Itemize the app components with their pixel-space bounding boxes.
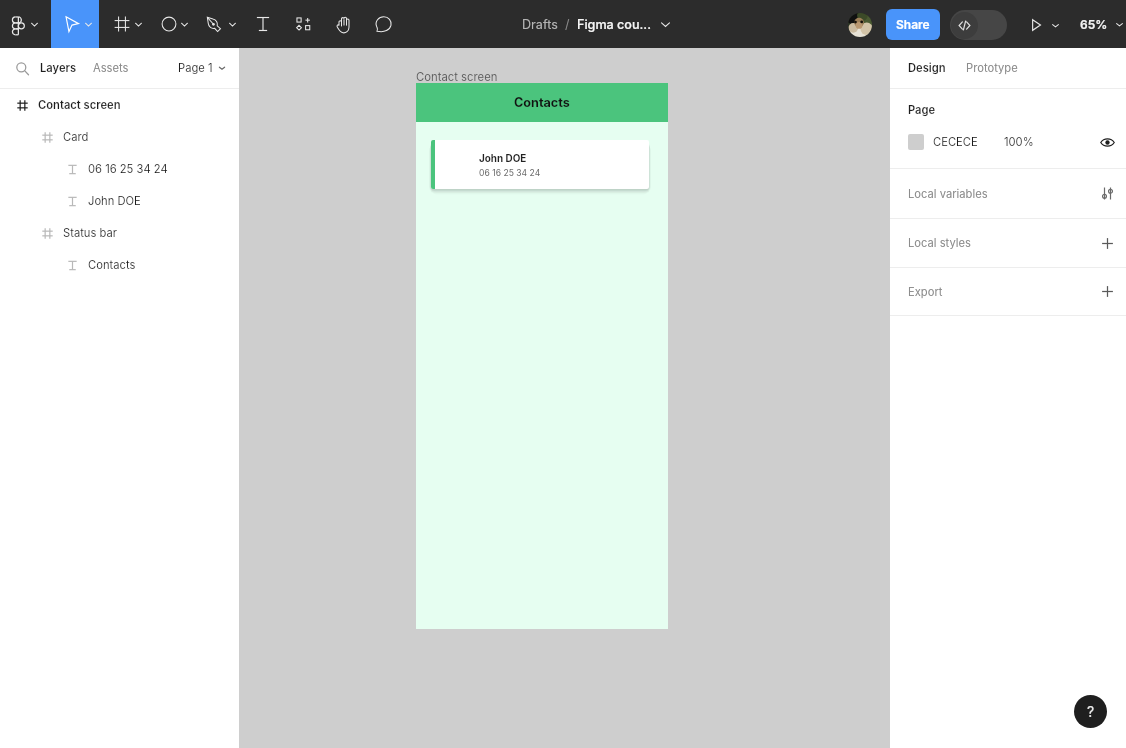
staticText: Layers [40, 61, 77, 75]
button[interactable]: Shape tool options [177, 0, 192, 48]
button[interactable]: Local variables [908, 169, 1115, 218]
staticText: Contacts [88, 258, 136, 272]
button[interactable]: Contacts [0, 249, 239, 281]
button[interactable]: Page 1 [178, 61, 227, 75]
button[interactable]: Status bar [0, 217, 239, 249]
button[interactable]: Dev mode [950, 10, 1007, 40]
button[interactable]: Shape tool [159, 0, 179, 48]
button[interactable]: John DOE [431, 140, 649, 189]
button[interactable]: Pen tool [205, 0, 223, 48]
staticText: ? [1087, 703, 1095, 720]
button[interactable]: CECECE [908, 129, 1115, 155]
button[interactable]: John DOE [0, 185, 239, 217]
staticText: Card [63, 130, 89, 144]
staticText: CECECE [933, 135, 978, 149]
button[interactable]: Search layers [15, 61, 30, 76]
button[interactable]: Layers [40, 61, 77, 75]
button[interactable]: Figma menu [10, 0, 28, 48]
staticText: Status bar [63, 226, 117, 240]
staticText: Local styles [908, 236, 971, 250]
button[interactable]: Present [1029, 18, 1061, 32]
button[interactable]: Card [0, 121, 239, 153]
staticText: Prototype [966, 61, 1018, 75]
button[interactable]: Assets [93, 61, 129, 75]
button[interactable]: Figma cou... [575, 17, 672, 32]
staticText: Contacts [514, 95, 570, 110]
button[interactable]: Prototype [966, 61, 1018, 75]
staticText: Share [896, 17, 930, 32]
staticText: Figma cou... [577, 17, 652, 32]
button[interactable]: Hand tool [333, 0, 353, 48]
button[interactable]: Text tool [254, 0, 272, 48]
staticText: Contact screen [416, 70, 498, 84]
staticText: 06 16 25 34 24 [88, 162, 168, 176]
staticText: Local variables [908, 187, 988, 201]
button[interactable]: Help [1074, 695, 1107, 728]
staticText: John DOE [479, 152, 527, 164]
staticText: Export [908, 285, 943, 299]
button[interactable]: Move tool options [81, 0, 96, 48]
button[interactable]: Frame tool options [131, 0, 146, 48]
staticText: 65% [1080, 17, 1108, 32]
button[interactable]: Share [886, 9, 940, 40]
button[interactable]: Main menu options [27, 0, 42, 48]
button[interactable]: Local styles [908, 219, 1115, 267]
staticText: Design [908, 61, 946, 75]
staticText: Assets [93, 61, 129, 75]
button[interactable]: 65% [1080, 17, 1125, 32]
button[interactable]: Drafts [520, 17, 560, 32]
button[interactable]: Design [908, 61, 946, 75]
button[interactable]: Account avatar [848, 13, 872, 37]
staticText: John DOE [88, 194, 141, 208]
staticText: Contact screen [38, 98, 121, 112]
button[interactable]: Pen tool options [225, 0, 240, 48]
button[interactable]: Actions [296, 0, 312, 48]
button[interactable]: Frame tool [113, 0, 131, 48]
staticText: Drafts [522, 17, 558, 32]
staticText: 06 16 25 34 24 [479, 168, 541, 178]
button[interactable]: 06 16 25 34 24 [0, 153, 239, 185]
button[interactable]: Contact screen [0, 89, 239, 121]
staticText: Page [908, 103, 936, 117]
staticText: / [565, 17, 570, 32]
staticText: 100% [1004, 135, 1034, 149]
button[interactable]: Comment [373, 0, 393, 48]
button[interactable]: Export [908, 268, 1115, 315]
button[interactable]: Move tool [63, 0, 81, 48]
staticText: Page 1 [178, 61, 213, 75]
